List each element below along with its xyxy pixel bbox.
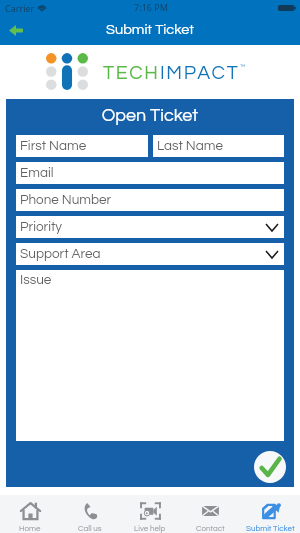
staticText: IMPACT: [160, 63, 240, 83]
button[interactable]: Call us: [60, 495, 120, 532]
staticText: Submit Ticket: [0, 22, 300, 37]
button[interactable]: Phone Number: [16, 189, 284, 211]
button[interactable]: Live help: [120, 495, 180, 532]
button[interactable]: Submit: [254, 451, 286, 483]
button[interactable]: Contact: [180, 495, 240, 532]
staticText: Carrier: [5, 2, 35, 14]
staticText: TECH: [103, 63, 160, 83]
staticText: Open Ticket: [16, 106, 284, 125]
staticText: Call us: [78, 524, 102, 532]
staticText: Last Name: [157, 139, 224, 153]
staticText: Priority: [20, 220, 63, 234]
staticText: ™: [240, 63, 246, 70]
staticText: Contact: [196, 524, 225, 532]
staticText: Live help: [134, 524, 166, 532]
button[interactable]: Priority: [16, 216, 284, 238]
staticText: 7:16 PM: [1, 1, 300, 13]
button[interactable]: Support Area: [16, 243, 284, 265]
button[interactable]: Last Name: [153, 135, 284, 157]
button[interactable]: Submit Ticket: [240, 495, 300, 532]
staticText: Phone Number: [20, 193, 112, 207]
button[interactable]: First Name: [16, 135, 148, 157]
staticText: Issue: [20, 273, 52, 287]
staticText: Support Area: [20, 247, 101, 261]
button[interactable]: Email: [16, 162, 284, 184]
staticText: Submit Ticket: [246, 524, 295, 532]
button[interactable]: Back: [4, 21, 27, 39]
staticText: Home: [19, 524, 41, 532]
staticText: Email: [20, 166, 54, 180]
button[interactable]: Home: [0, 495, 60, 532]
button[interactable]: Issue: [16, 270, 284, 441]
staticText: First Name: [20, 139, 87, 153]
